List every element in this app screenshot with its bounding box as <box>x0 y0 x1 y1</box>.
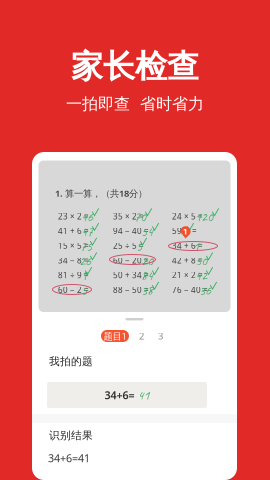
staticText: 2 <box>139 330 144 342</box>
staticText: 34 + 6 = <box>172 240 203 251</box>
staticText: 38 <box>141 282 153 299</box>
staticText: 34+6=41 <box>48 451 90 465</box>
staticText: 23 × 2 = <box>58 211 89 222</box>
staticText: 41 + 6 = <box>58 226 89 236</box>
staticText: 59 = <box>172 226 197 236</box>
staticText: 75 <box>80 238 92 255</box>
staticText: 42 + 8 = <box>172 255 203 266</box>
staticText: 34+6= <box>104 388 134 402</box>
staticText: 84 <box>141 267 153 284</box>
staticText: 1 <box>193 238 199 255</box>
staticText: 50 + 34 = <box>113 270 149 280</box>
staticText: 我拍的题 <box>49 355 93 368</box>
staticText: 20 <box>141 253 153 269</box>
staticText: 9 <box>81 267 87 284</box>
staticText: 15 × 5 = <box>58 240 89 251</box>
staticText: 题目1 <box>103 330 126 342</box>
staticText: 36 <box>199 282 211 299</box>
staticText: 家长检查 <box>71 47 199 86</box>
staticText: 1 <box>183 226 188 237</box>
staticText: 1. 算一算，（共18分） <box>55 187 147 199</box>
staticText: 47 <box>81 223 93 240</box>
staticText: 26 <box>79 253 91 269</box>
staticText: 54 <box>141 223 153 240</box>
staticText: 5 <box>136 238 142 255</box>
staticText: 24 × 5 = <box>172 211 203 222</box>
staticText: 25 ÷ 5 = <box>113 240 144 251</box>
staticText: 81 ÷ 9 = <box>58 270 89 280</box>
staticText: 88 − 50 = <box>113 284 149 295</box>
staticText: 42 <box>195 267 207 284</box>
staticText: 41 <box>137 387 149 403</box>
staticText: 21 × 2 = <box>172 270 203 280</box>
staticText: 70 <box>134 208 146 225</box>
staticText: 94 − 40 = <box>113 226 149 236</box>
button[interactable]: 题目1 <box>101 330 129 342</box>
staticText: 5 <box>81 282 87 299</box>
staticText: 34 − 8 = <box>58 255 89 266</box>
staticText: 识别结果 <box>49 429 93 442</box>
staticText: 35 × 2 = <box>113 211 144 222</box>
staticText: 6 <box>181 223 187 240</box>
staticText: 46 <box>81 208 93 225</box>
staticText: 60 − 2 = <box>58 284 89 295</box>
button[interactable]: 3 <box>154 330 167 342</box>
staticText: 一拍即查 省时省力 <box>66 94 204 114</box>
button[interactable]: 2 <box>135 330 148 342</box>
staticText: 3 <box>158 330 163 342</box>
staticText: 120 <box>195 208 213 225</box>
staticText: 50 <box>195 253 207 269</box>
staticText: 60 − 20 = <box>113 255 149 266</box>
staticText: 76 − 40 = <box>172 284 208 295</box>
